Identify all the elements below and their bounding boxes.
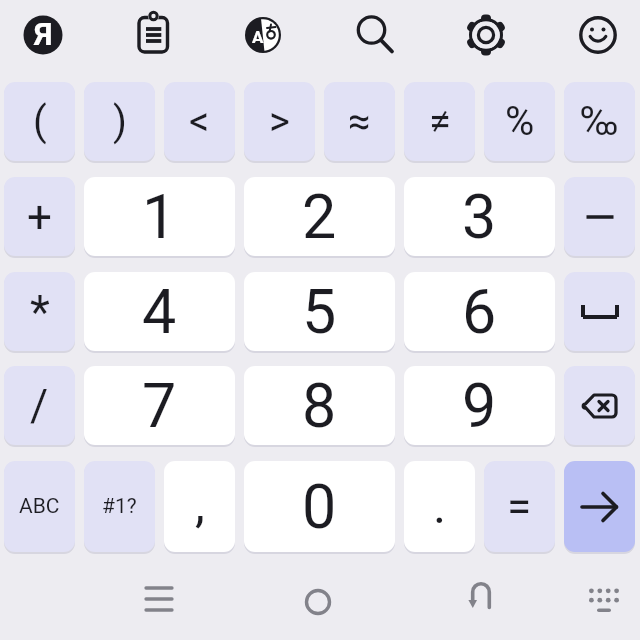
button[interactable]: =: [484, 461, 555, 552]
staticText: ABC: [19, 494, 60, 519]
button[interactable]: [354, 12, 396, 54]
button[interactable]: ≠: [404, 82, 475, 161]
button[interactable]: ABC: [4, 461, 75, 552]
staticText: ≈: [348, 98, 371, 145]
button[interactable]: 7: [84, 366, 235, 445]
button[interactable]: 9: [404, 366, 555, 445]
staticText: 8: [302, 370, 337, 441]
staticText: >: [269, 98, 290, 145]
staticText: 7: [142, 370, 177, 441]
button[interactable]: Я: [23, 15, 63, 55]
button[interactable]: [465, 14, 507, 56]
button[interactable]: [579, 16, 617, 54]
button[interactable]: 2: [244, 177, 395, 256]
button[interactable]: [142, 582, 176, 616]
button[interactable]: 5: [244, 272, 395, 351]
staticText: 5: [302, 276, 337, 347]
button[interactable]: [564, 461, 635, 552]
button[interactable]: >: [244, 82, 315, 161]
button[interactable]: [564, 366, 635, 445]
button[interactable]: ≈: [324, 82, 395, 161]
staticText: +: [27, 191, 52, 243]
staticText: ,: [195, 475, 205, 534]
button[interactable]: (: [4, 82, 75, 161]
button[interactable]: +: [4, 177, 75, 256]
button[interactable]: %: [484, 82, 555, 161]
button[interactable]: [564, 177, 635, 256]
staticText: 6: [462, 276, 497, 347]
staticText: A: [252, 27, 264, 47]
button[interactable]: 6: [404, 272, 555, 351]
staticText: =: [507, 481, 532, 533]
staticText: #1?: [102, 494, 137, 519]
staticText: <: [189, 98, 210, 145]
button[interactable]: ‰: [564, 82, 635, 161]
button[interactable]: 8: [244, 366, 395, 445]
button[interactable]: /: [4, 366, 75, 445]
staticText: /: [30, 380, 49, 432]
button[interactable]: 4: [84, 272, 235, 351]
staticText: 3: [462, 181, 497, 252]
button[interactable]: [303, 587, 333, 617]
staticText: %: [505, 98, 535, 145]
button[interactable]: A: [245, 17, 281, 53]
staticText: (: [33, 98, 47, 145]
staticText: ‰: [580, 98, 619, 145]
button[interactable]: ,: [164, 461, 235, 552]
button[interactable]: #1?: [84, 461, 155, 552]
button[interactable]: *: [4, 272, 75, 351]
staticText: *: [30, 285, 50, 339]
button[interactable]: 1: [84, 177, 235, 256]
staticText: 0: [302, 471, 337, 542]
button[interactable]: [465, 580, 497, 612]
button[interactable]: .: [404, 461, 475, 552]
staticText: 4: [142, 276, 177, 347]
staticText: 9: [462, 370, 497, 441]
staticText: .: [433, 477, 447, 536]
staticText: 2: [302, 181, 337, 252]
button[interactable]: [585, 584, 621, 620]
staticText: ): [113, 98, 127, 145]
staticText: ≠: [429, 98, 451, 145]
button[interactable]: [134, 8, 174, 58]
button[interactable]: ): [84, 82, 155, 161]
staticText: 1: [142, 181, 177, 252]
staticText: Я: [34, 16, 53, 52]
button[interactable]: 0: [244, 461, 395, 552]
button[interactable]: [564, 272, 635, 351]
button[interactable]: 3: [404, 177, 555, 256]
button[interactable]: <: [164, 82, 235, 161]
